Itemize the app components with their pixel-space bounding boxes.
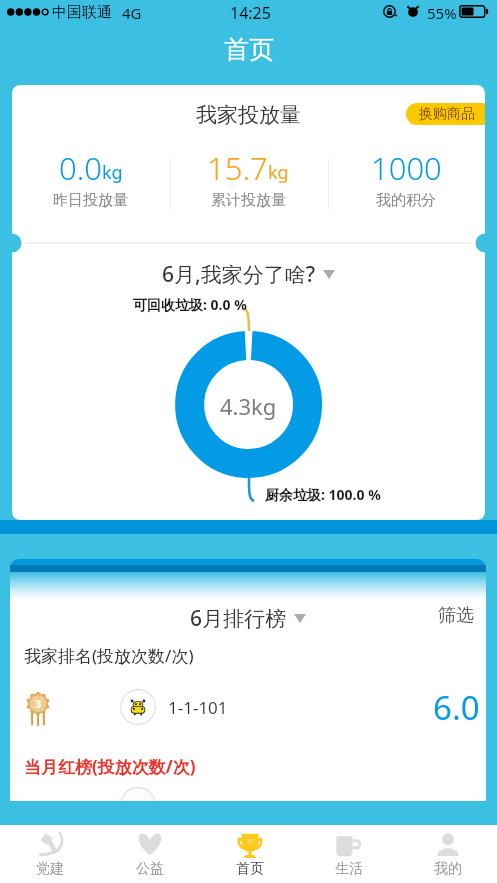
staticText: 我家投放量	[196, 102, 301, 128]
staticText: 我家排名(投放次数/次)	[24, 644, 194, 667]
staticText: 6月排行榜	[190, 604, 287, 633]
staticText: 0.0	[59, 147, 102, 189]
staticText: 党建	[36, 860, 64, 878]
staticText: 1000	[371, 147, 442, 189]
button[interactable]: 筛选	[426, 598, 486, 633]
staticText: 公益	[136, 860, 164, 878]
button[interactable]: 换购商品	[406, 103, 485, 125]
staticText: 生活	[335, 860, 363, 878]
button[interactable]: 15.7	[169, 147, 327, 209]
button[interactable]: 首页	[200, 825, 299, 883]
other: Select month	[294, 614, 306, 623]
button[interactable]: 0.0	[12, 147, 169, 209]
button[interactable]: 3	[10, 684, 486, 730]
staticText: 昨日投放量	[53, 191, 128, 209]
staticText: 15.7	[207, 147, 268, 189]
staticText: 我的积分	[376, 191, 436, 209]
button[interactable]: 1000	[327, 147, 485, 209]
button[interactable]: 公益	[100, 825, 200, 883]
staticText: 6.0	[433, 685, 480, 730]
button[interactable]: 党建	[0, 825, 100, 883]
staticText: 4G	[122, 3, 142, 23]
button[interactable]: 我的	[398, 825, 497, 883]
staticText: 55%	[427, 3, 457, 23]
staticText: 厨余垃圾: 100.0 %	[265, 485, 381, 504]
staticText: 中国联通	[52, 3, 112, 22]
staticText: 可回收垃圾: 0.0 %	[133, 295, 247, 314]
staticText: 6月,我家分了啥?	[162, 260, 316, 289]
staticText: kg	[268, 160, 289, 185]
staticText: 3	[35, 696, 42, 711]
staticText: 1-1-101	[168, 696, 228, 719]
staticText: 当月红榜(投放次数/次)	[24, 755, 196, 778]
staticText: 首页	[236, 860, 264, 878]
staticText: kg	[102, 160, 123, 185]
staticText: 14:25	[230, 2, 271, 24]
staticText: 累计投放量	[211, 191, 286, 209]
other: Select month	[323, 270, 335, 279]
staticText: 筛选	[438, 604, 474, 627]
staticText: 4.3kg	[220, 391, 277, 421]
staticText: 换购商品	[419, 105, 475, 123]
button[interactable]: 生活	[299, 825, 398, 883]
staticText: 我的	[434, 860, 462, 878]
staticText: 首页	[224, 34, 274, 65]
